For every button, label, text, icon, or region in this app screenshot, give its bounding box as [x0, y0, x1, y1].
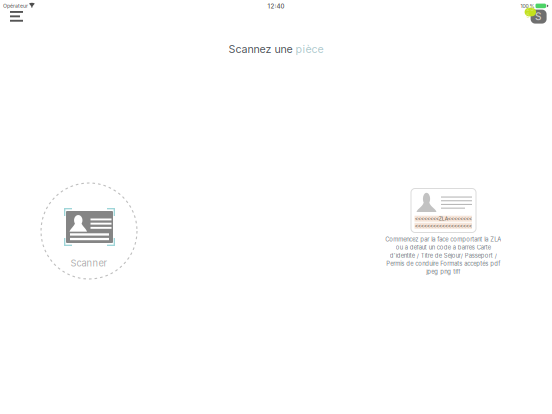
staticText: S — [535, 10, 542, 23]
staticText: <<<<<<<<ZLA<<<<<<<< — [415, 216, 472, 222]
button[interactable]: Scanner — [41, 183, 137, 279]
staticText: pièce — [295, 42, 323, 55]
staticText: Scanner — [70, 257, 107, 269]
button[interactable]: Menu — [0, 0, 33, 33]
button[interactable]: Profil — [520, 0, 552, 30]
staticText: Scannez une — [228, 42, 295, 55]
staticText: <<<<<<<<<<<<<<<<<<< — [415, 223, 472, 229]
staticText: Opérateur — [3, 3, 28, 9]
staticText: Commencez par la face comportant la ZLA … — [385, 236, 501, 275]
staticText: 12:40 — [267, 3, 284, 10]
staticText: 235 — [526, 5, 534, 19]
staticText: 100 % — [520, 3, 534, 9]
